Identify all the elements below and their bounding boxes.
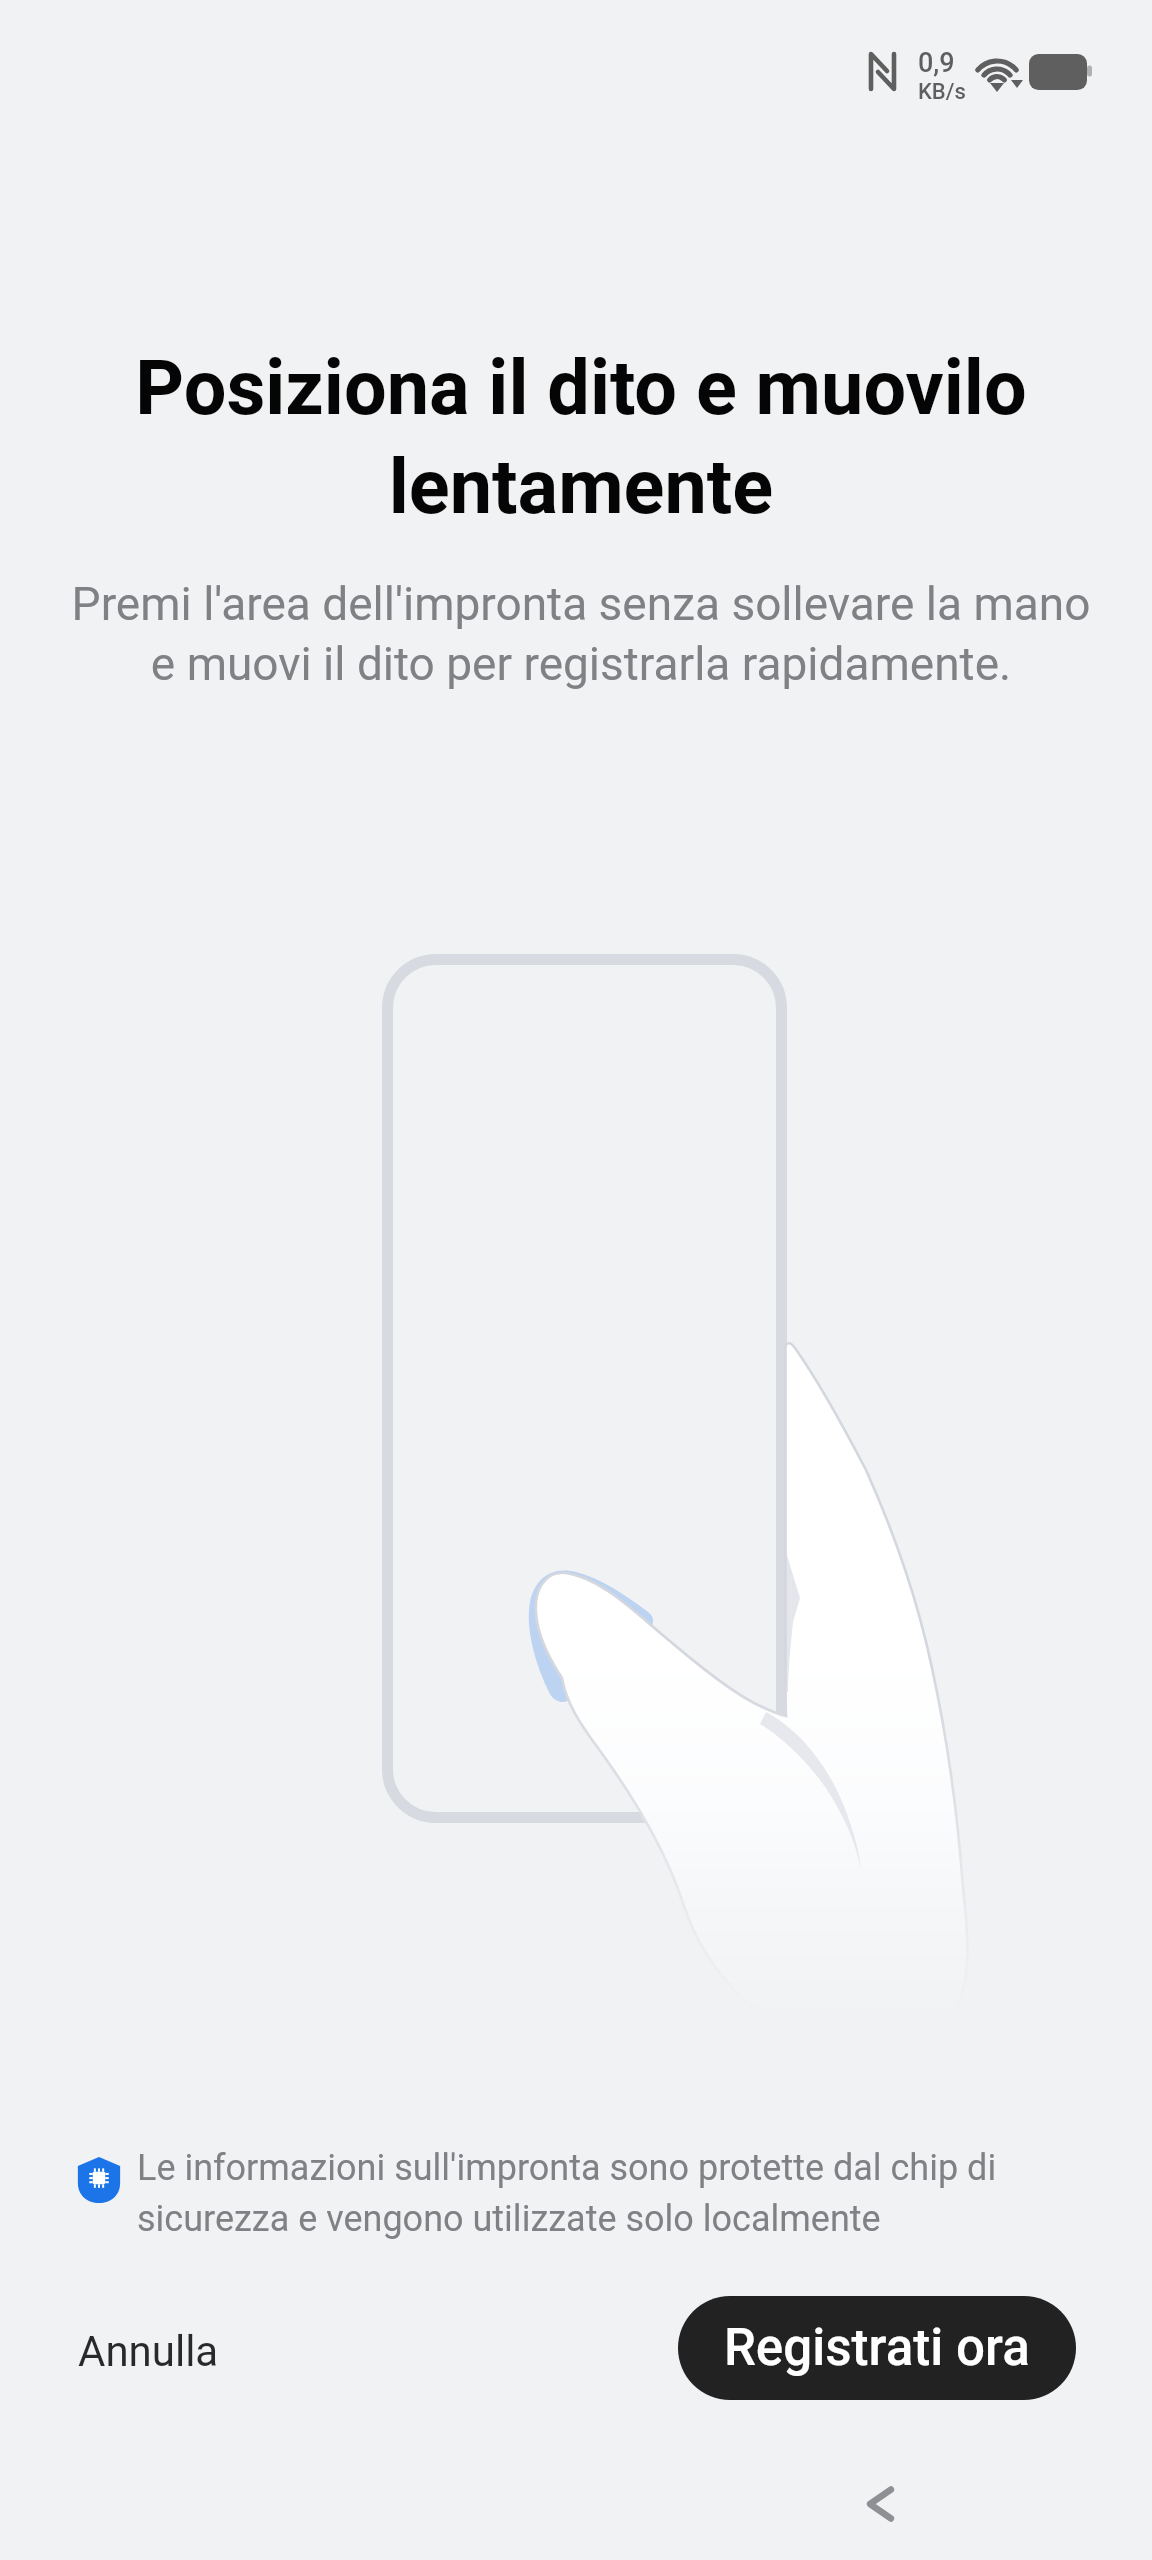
staticText: Posiziona il dito e muovilo lentamente [85,344,1077,531]
other: Security chip [75,2156,123,2204]
button[interactable]: Registrati ora [678,2296,1076,2400]
button[interactable]: Annulla [62,2309,235,2394]
staticText: KB/s [918,79,966,105]
button[interactable]: Back [826,2449,936,2559]
staticText: Registrati ora [724,2318,1030,2378]
staticText: Premi l'area dell'impronta senza solleva… [66,577,1096,691]
staticText: Le informazioni sull'impronta sono prote… [137,2147,1005,2240]
staticText: 0,9 [918,47,955,79]
staticText: Annulla [78,2327,219,2376]
